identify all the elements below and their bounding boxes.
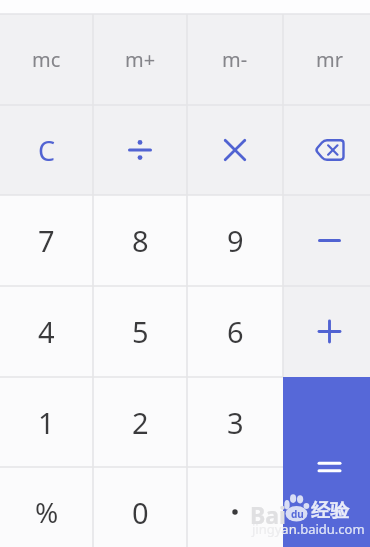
button[interactable]: mr	[283, 14, 370, 105]
button[interactable]: mc	[0, 14, 93, 105]
staticText: m-	[222, 46, 248, 73]
staticText: 9	[227, 221, 244, 260]
button[interactable]: 8	[93, 195, 187, 286]
staticText: 2	[132, 403, 149, 442]
staticText: 经验	[311, 499, 349, 523]
button[interactable]: m-	[187, 14, 283, 105]
button[interactable]	[283, 286, 370, 377]
staticText: 5	[132, 312, 149, 351]
button[interactable]: 9	[187, 195, 283, 286]
button[interactable]	[283, 105, 370, 195]
button[interactable]	[283, 377, 370, 547]
button[interactable]: 1	[0, 377, 93, 467]
staticText: 8	[132, 221, 149, 260]
staticText: %	[35, 493, 59, 531]
staticText: Bai	[250, 499, 286, 530]
button[interactable]: 0	[93, 467, 187, 547]
button[interactable]: %	[0, 467, 93, 547]
button[interactable]: 3	[187, 377, 283, 467]
button[interactable]: C	[0, 105, 93, 195]
button[interactable]	[187, 105, 283, 195]
button[interactable]: 6	[187, 286, 283, 377]
button[interactable]: 2	[93, 377, 187, 467]
button[interactable]: 5	[93, 286, 187, 377]
staticText: du	[291, 507, 304, 521]
button[interactable]: m+	[93, 14, 187, 105]
button[interactable]	[283, 195, 370, 286]
staticText: 7	[38, 221, 55, 260]
button[interactable]: 4	[0, 286, 93, 377]
button[interactable]: 7	[0, 195, 93, 286]
staticText: C	[38, 132, 56, 169]
button[interactable]	[93, 105, 187, 195]
staticText: 0	[132, 493, 149, 532]
staticText: 4	[38, 312, 55, 351]
button[interactable]	[187, 467, 283, 547]
staticText: 3	[227, 403, 244, 442]
staticText: 6	[227, 312, 244, 351]
staticText: jingyan.baidu.com	[252, 520, 365, 538]
staticText: mc	[32, 46, 61, 73]
staticText: 1	[38, 403, 55, 442]
staticText: m+	[125, 46, 156, 73]
staticText: mr	[316, 46, 343, 73]
